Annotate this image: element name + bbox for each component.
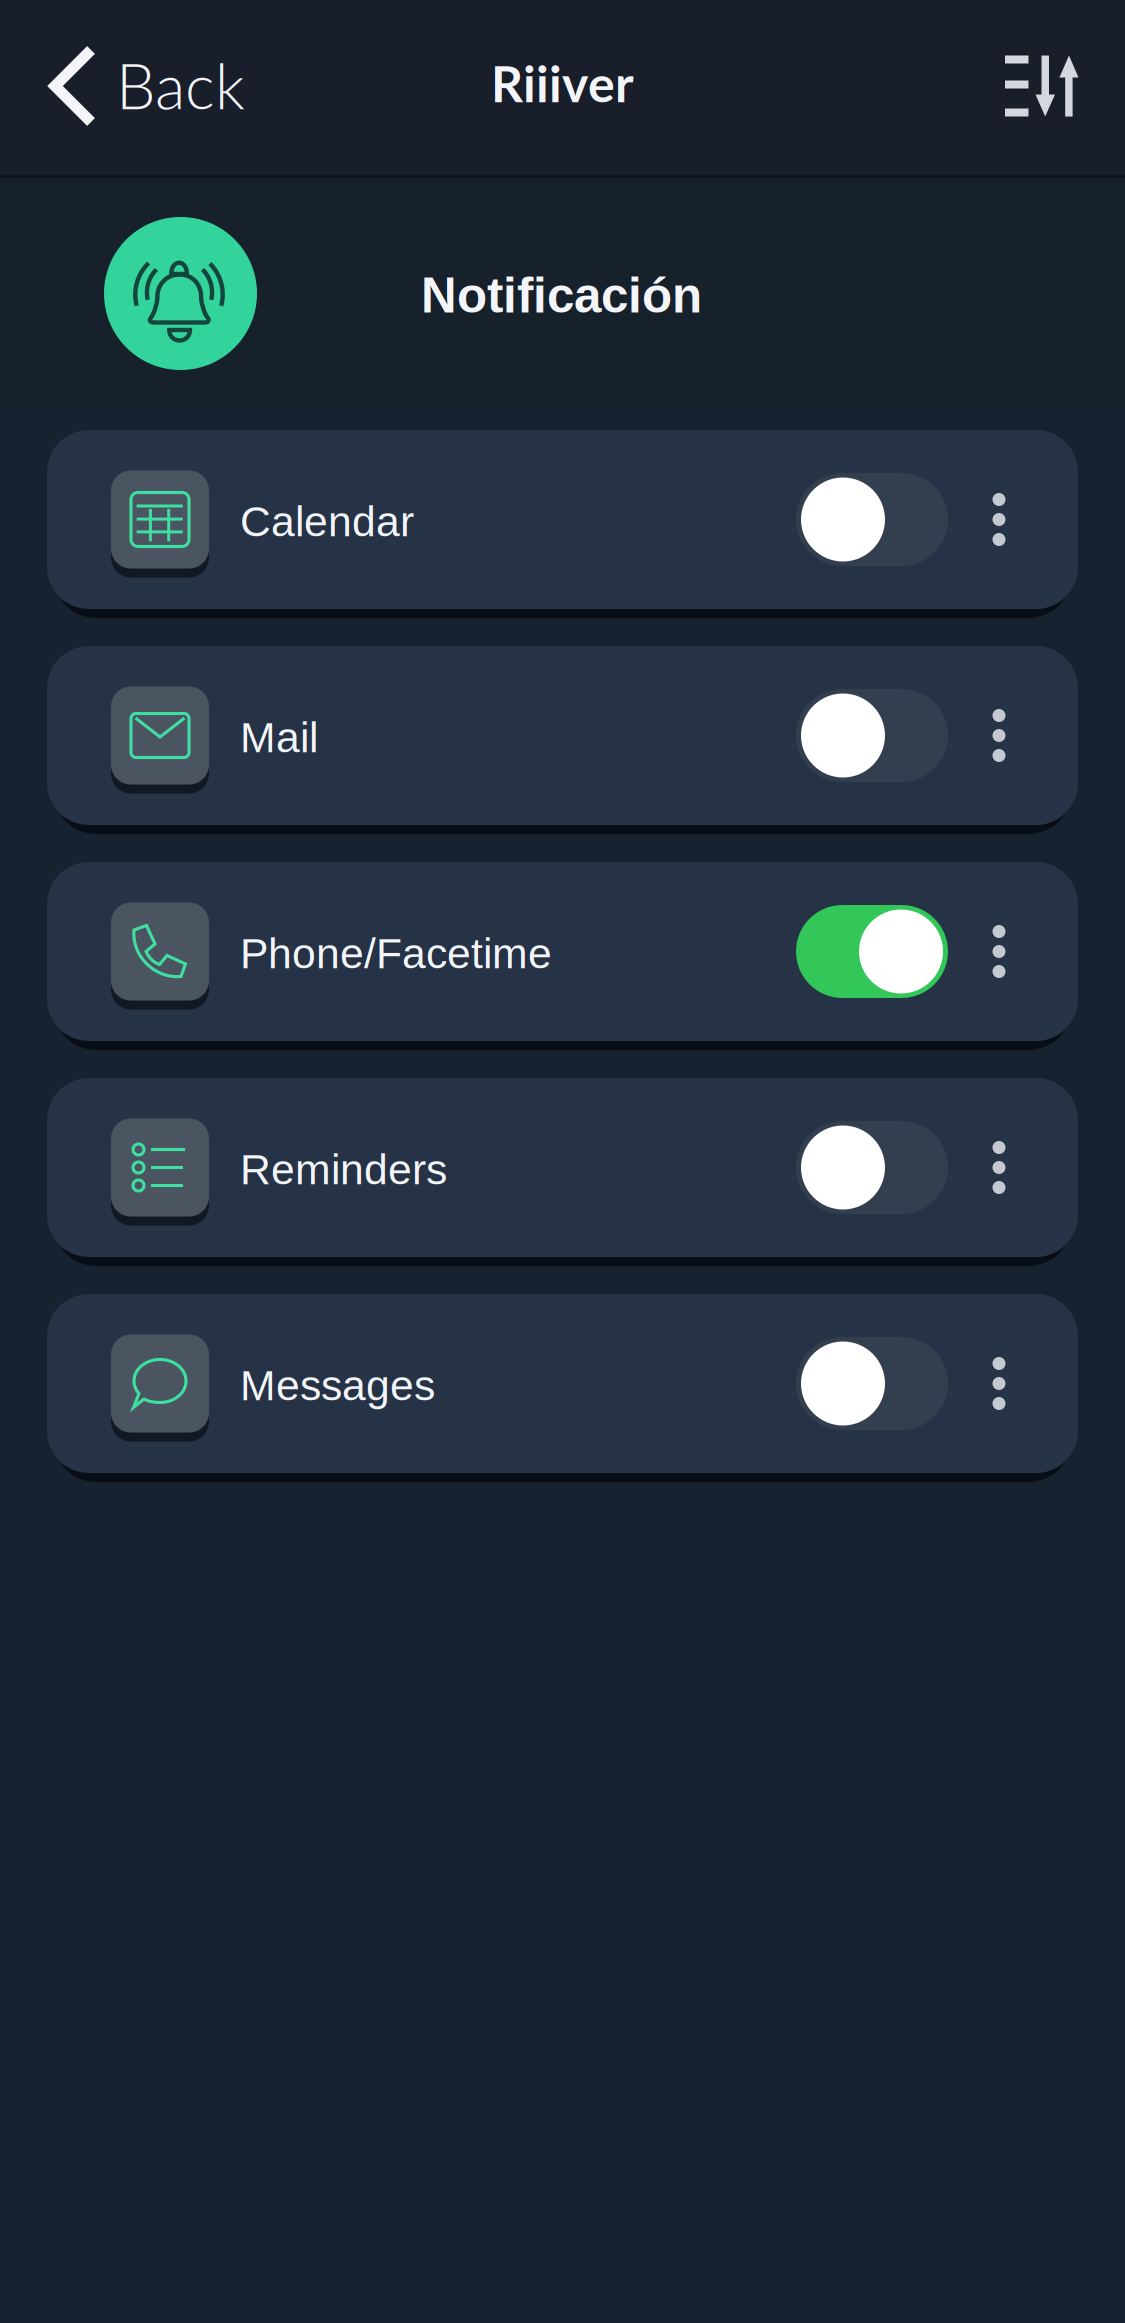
button[interactable]: More options — [971, 473, 1027, 566]
button[interactable]: More options — [971, 905, 1027, 998]
staticText: Notificación — [421, 268, 702, 323]
button[interactable]: More options — [971, 689, 1027, 782]
button[interactable]: Reminders off — [796, 1121, 948, 1214]
button[interactable]: Messages off — [796, 1337, 948, 1430]
button[interactable]: Phone/Facetime — [47, 862, 796, 1041]
button[interactable]: Back — [0, 23, 245, 155]
staticText: Mail — [240, 714, 318, 761]
staticText: Messages — [240, 1362, 435, 1409]
button[interactable]: Phone/Facetime on — [796, 905, 948, 998]
button[interactable]: Calendar — [47, 430, 796, 609]
button[interactable]: Reminders — [47, 1078, 796, 1257]
button[interactable]: Mail — [47, 646, 796, 825]
staticText: Riiiver — [491, 53, 634, 113]
staticText: Back — [116, 47, 245, 123]
staticText: Phone/Facetime — [240, 930, 552, 977]
staticText: Calendar — [240, 498, 414, 545]
button[interactable]: Sort — [1002, 32, 1125, 146]
staticText: Reminders — [240, 1146, 447, 1193]
button[interactable]: More options — [971, 1121, 1027, 1214]
button[interactable]: More options — [971, 1337, 1027, 1430]
button[interactable]: Messages — [47, 1294, 796, 1473]
button[interactable]: Mail off — [796, 689, 948, 782]
button[interactable]: Calendar off — [796, 473, 948, 566]
